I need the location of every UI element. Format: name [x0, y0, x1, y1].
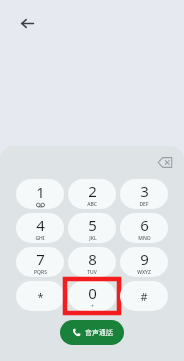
staticText: 3	[140, 181, 149, 201]
staticText: +	[91, 303, 94, 310]
button[interactable]: 8	[68, 247, 116, 277]
staticText: 9	[140, 249, 149, 269]
button[interactable]: Backspace	[152, 149, 178, 175]
button[interactable]: 7	[16, 247, 64, 277]
staticText: 6	[140, 215, 149, 235]
button[interactable]: 音声通話	[60, 320, 124, 345]
button[interactable]: 3	[120, 179, 168, 209]
staticText: 7	[36, 249, 45, 269]
button[interactable]: 4	[16, 213, 64, 243]
button[interactable]: 9	[120, 247, 168, 277]
staticText: *	[37, 289, 44, 304]
staticText: WXYZ	[137, 269, 151, 276]
staticText: 2	[88, 181, 97, 201]
button[interactable]: #	[120, 281, 168, 311]
button[interactable]: 2	[68, 179, 116, 209]
staticText: ABC	[87, 201, 97, 208]
staticText: 音声通話	[85, 328, 113, 337]
staticText: #	[140, 289, 148, 304]
staticText: 1	[36, 182, 45, 202]
staticText: PQRS	[34, 269, 47, 276]
staticText: 8	[88, 249, 97, 269]
button[interactable]: 5	[68, 213, 116, 243]
staticText: MNO	[138, 235, 151, 242]
button[interactable]: 1	[16, 179, 64, 209]
staticText: 5	[88, 215, 97, 235]
staticText: DEF	[139, 201, 149, 208]
button[interactable]: 0	[68, 281, 116, 311]
staticText: JKL	[89, 235, 97, 242]
staticText: GHI	[35, 235, 45, 242]
button[interactable]: 6	[120, 213, 168, 243]
staticText: TUV	[87, 269, 97, 276]
button[interactable]: Back	[14, 10, 40, 36]
button[interactable]: *	[16, 281, 64, 311]
staticText: 0	[88, 283, 97, 303]
staticText: 4	[36, 215, 45, 235]
